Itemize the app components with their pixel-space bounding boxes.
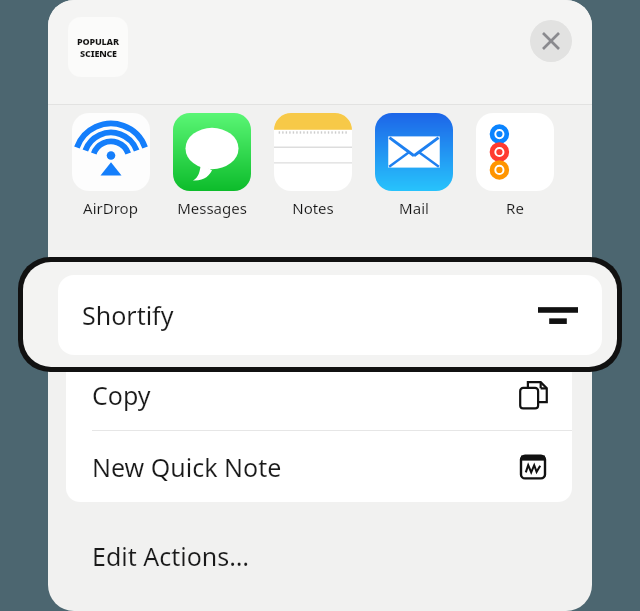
button[interactable]: Mail: [363, 105, 464, 218]
staticText: SCIENCE: [80, 47, 117, 59]
button[interactable]: Close: [530, 20, 572, 62]
button[interactable]: New Quick Note: [66, 431, 572, 502]
staticText: Messages: [177, 198, 247, 218]
staticText: Mail: [399, 198, 429, 218]
button[interactable]: Shortify: [58, 275, 602, 355]
button[interactable]: Re: [464, 105, 565, 218]
staticText: POPULAR: [77, 35, 119, 47]
staticText: Edit Actions…: [92, 539, 250, 573]
button[interactable]: Messages: [161, 105, 262, 218]
staticText: Shortify: [82, 298, 174, 332]
staticText: Re: [506, 198, 524, 218]
staticText: AirDrop: [83, 198, 138, 218]
button[interactable]: AirDrop: [60, 105, 161, 218]
button[interactable]: Copy: [66, 359, 572, 430]
staticText: New Quick Note: [92, 450, 282, 484]
staticText: Copy: [92, 378, 151, 412]
button[interactable]: Notes: [262, 105, 363, 218]
staticText: Notes: [292, 198, 334, 218]
button[interactable]: Edit Actions…: [48, 520, 592, 592]
